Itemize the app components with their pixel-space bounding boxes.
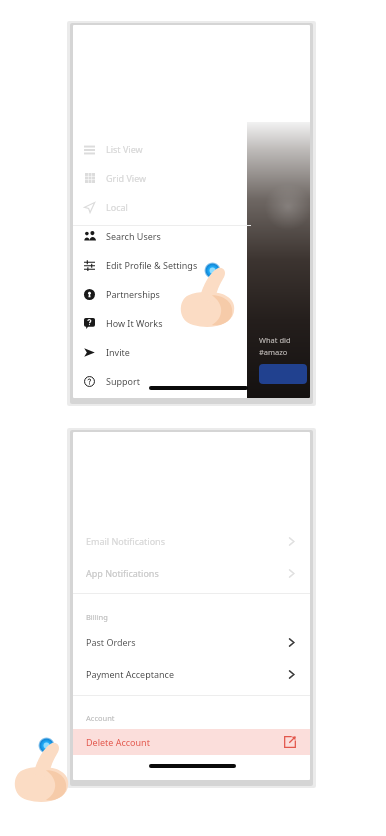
button[interactable]: Payment Acceptance bbox=[73, 661, 310, 687]
staticText: Account bbox=[86, 713, 115, 723]
button[interactable]: Invite bbox=[73, 338, 251, 366]
button[interactable]: Local bbox=[73, 193, 251, 221]
button[interactable]: Grid View bbox=[73, 164, 251, 192]
staticText: Search Users bbox=[106, 230, 161, 242]
staticText: How It Works bbox=[106, 317, 163, 329]
staticText: Grid View bbox=[106, 172, 147, 184]
button[interactable]: Past Orders bbox=[73, 629, 310, 655]
staticText: Partnerships bbox=[106, 288, 160, 300]
staticText: Delete Account bbox=[86, 736, 150, 748]
staticText: What did bbox=[259, 335, 291, 345]
staticText: Billing bbox=[86, 612, 108, 622]
staticText: Payment Acceptance bbox=[86, 668, 174, 680]
button[interactable]: App Notifications bbox=[73, 560, 310, 586]
staticText: Edit Profile & Settings bbox=[106, 259, 198, 271]
staticText: Past Orders bbox=[86, 636, 136, 648]
button[interactable]: Partnerships bbox=[73, 280, 251, 308]
staticText: Support bbox=[106, 375, 140, 387]
button[interactable]: Email Notifications bbox=[73, 528, 310, 554]
button[interactable]: Support bbox=[73, 367, 251, 395]
staticText: Local bbox=[106, 201, 128, 213]
staticText: Email Notifications bbox=[86, 535, 165, 547]
button[interactable]: List View bbox=[73, 135, 251, 163]
other: Delete Account external link bbox=[283, 735, 297, 749]
button[interactable]: Edit Profile & Settings bbox=[73, 251, 251, 279]
button[interactable]: How It Works bbox=[73, 309, 251, 337]
button[interactable] bbox=[259, 364, 307, 384]
staticText: Invite bbox=[106, 346, 130, 358]
button[interactable]: Search Users bbox=[73, 222, 251, 250]
staticText: #amazo bbox=[259, 347, 288, 357]
button[interactable]: Delete Account bbox=[73, 729, 310, 755]
staticText: App Notifications bbox=[86, 567, 159, 579]
staticText: List View bbox=[106, 143, 143, 155]
